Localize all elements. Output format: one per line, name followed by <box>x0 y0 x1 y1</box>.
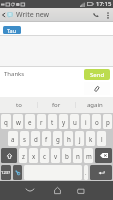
staticText: t <box>51 118 54 126</box>
button[interactable]: 123? <box>1 165 11 180</box>
staticText: 17:15 <box>96 0 112 8</box>
staticText: v <box>54 152 58 160</box>
button[interactable]: v <box>51 148 60 163</box>
staticText: c <box>43 152 46 160</box>
button[interactable]: u <box>70 114 79 129</box>
button[interactable]: Home <box>45 181 69 200</box>
staticText: k <box>89 135 93 143</box>
button[interactable] <box>13 165 22 180</box>
staticText: f <box>45 135 48 143</box>
staticText: h <box>67 135 71 143</box>
button[interactable]: o <box>92 114 101 129</box>
button[interactable]: i <box>81 114 90 129</box>
button[interactable]: c <box>40 148 49 163</box>
button[interactable]: Send <box>84 69 110 80</box>
button[interactable]: e <box>25 114 35 129</box>
button[interactable]: w <box>13 114 23 129</box>
button[interactable]: a <box>8 131 18 146</box>
button[interactable]: Navigate up <box>0 8 6 22</box>
button[interactable]: g <box>53 131 62 146</box>
staticText: s <box>23 135 26 143</box>
button[interactable]: for <box>38 97 75 113</box>
button[interactable] <box>1 148 17 163</box>
staticText: to <box>16 101 22 109</box>
button[interactable]: s <box>20 131 29 146</box>
button[interactable]: l <box>97 131 106 146</box>
staticText: g <box>56 135 60 143</box>
staticText: 123? <box>1 170 11 176</box>
button[interactable]: f <box>42 131 51 146</box>
staticText: Thanks <box>4 70 25 78</box>
staticText: x <box>32 152 36 160</box>
staticText: for <box>52 101 61 109</box>
staticText: z <box>22 152 25 160</box>
staticText: q <box>4 118 8 126</box>
button[interactable]: m <box>84 148 93 163</box>
button[interactable]: x <box>29 148 38 163</box>
staticText: l <box>101 135 103 143</box>
button[interactable]: j <box>75 131 84 146</box>
button[interactable]: again <box>76 97 113 113</box>
staticText: o <box>95 118 99 126</box>
staticText: again <box>87 101 103 109</box>
staticText: . <box>85 169 87 176</box>
staticText: m <box>86 152 92 160</box>
button[interactable]: z <box>19 148 27 163</box>
button[interactable]: More options <box>103 8 113 22</box>
staticText: j <box>79 135 81 143</box>
button[interactable]: q <box>1 114 11 129</box>
staticText: n <box>76 152 80 160</box>
button[interactable]: Attach <box>84 82 110 95</box>
button[interactable] <box>90 165 112 180</box>
button[interactable]: b <box>62 148 71 163</box>
button[interactable]: . <box>84 165 88 180</box>
staticText: r <box>40 118 43 126</box>
button[interactable]: to <box>0 97 37 113</box>
button[interactable]: r <box>37 114 46 129</box>
button[interactable] <box>95 148 112 163</box>
staticText: b <box>65 152 69 160</box>
staticText: Tau <box>7 27 17 34</box>
button[interactable]: n <box>73 148 82 163</box>
staticText: u <box>73 118 77 126</box>
button[interactable]: Back <box>18 181 42 200</box>
staticText: a <box>11 135 15 143</box>
staticText: p <box>106 118 110 126</box>
staticText: d <box>34 135 38 143</box>
button[interactable]: k <box>86 131 95 146</box>
button[interactable]: Recent apps <box>68 181 92 200</box>
button[interactable]: Call <box>89 8 103 22</box>
staticText: w <box>16 118 21 126</box>
button[interactable]: y <box>59 114 68 129</box>
button[interactable]: p <box>103 114 112 129</box>
button[interactable]: Tau <box>3 26 21 34</box>
button[interactable]: d <box>31 131 40 146</box>
staticText: y <box>62 118 66 126</box>
staticText: i <box>85 118 87 126</box>
staticText: e <box>28 118 32 126</box>
button[interactable]: t <box>48 114 57 129</box>
staticText: Send <box>90 71 105 79</box>
button[interactable]: h <box>64 131 73 146</box>
staticText: Write new <box>16 10 50 20</box>
